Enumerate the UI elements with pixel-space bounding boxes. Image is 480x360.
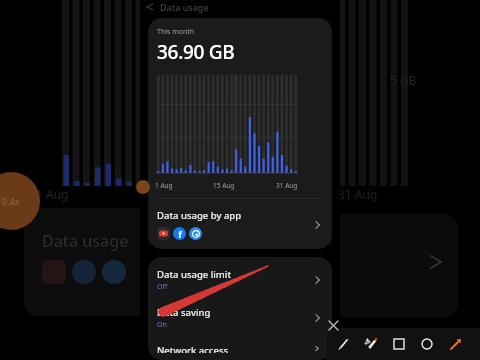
staticText: 0.4x <box>2 195 20 207</box>
button[interactable]: Arrow <box>442 331 468 357</box>
button[interactable]: Data saving <box>148 299 332 337</box>
staticText: f <box>178 228 182 240</box>
staticText: 36.90 GB <box>157 39 235 65</box>
button[interactable]: Network access <box>148 337 332 360</box>
staticText: Off <box>157 282 168 292</box>
button[interactable]: Ellipse <box>414 331 440 357</box>
staticText: 15 Aug <box>213 181 235 190</box>
staticText: Data usage <box>42 230 129 252</box>
staticText: Data usage <box>160 1 209 13</box>
staticText: 5 GB <box>390 72 417 88</box>
staticText: Data usage limit <box>157 268 232 281</box>
staticText: This month <box>157 27 195 37</box>
staticText: Data usage by app <box>157 209 242 222</box>
staticText: Data saving <box>157 306 211 319</box>
staticText: 1 Aug <box>36 186 69 202</box>
staticText: Network access <box>157 344 229 353</box>
staticText: 31 Aug <box>338 186 378 202</box>
button[interactable]: Rectangle <box>386 331 412 357</box>
staticText: 31 Aug <box>276 181 298 190</box>
button[interactable]: Highlighter <box>358 331 384 357</box>
button[interactable]: Playback speed <box>0 172 40 230</box>
button[interactable]: Data usage limit <box>148 261 332 299</box>
button[interactable]: Data usage by app <box>148 201 332 249</box>
button[interactable]: Back <box>144 1 156 13</box>
staticText: On <box>157 320 167 330</box>
button[interactable]: Close <box>324 316 342 334</box>
button[interactable]: Pen <box>330 331 356 357</box>
staticText: 1 Aug <box>155 181 173 190</box>
